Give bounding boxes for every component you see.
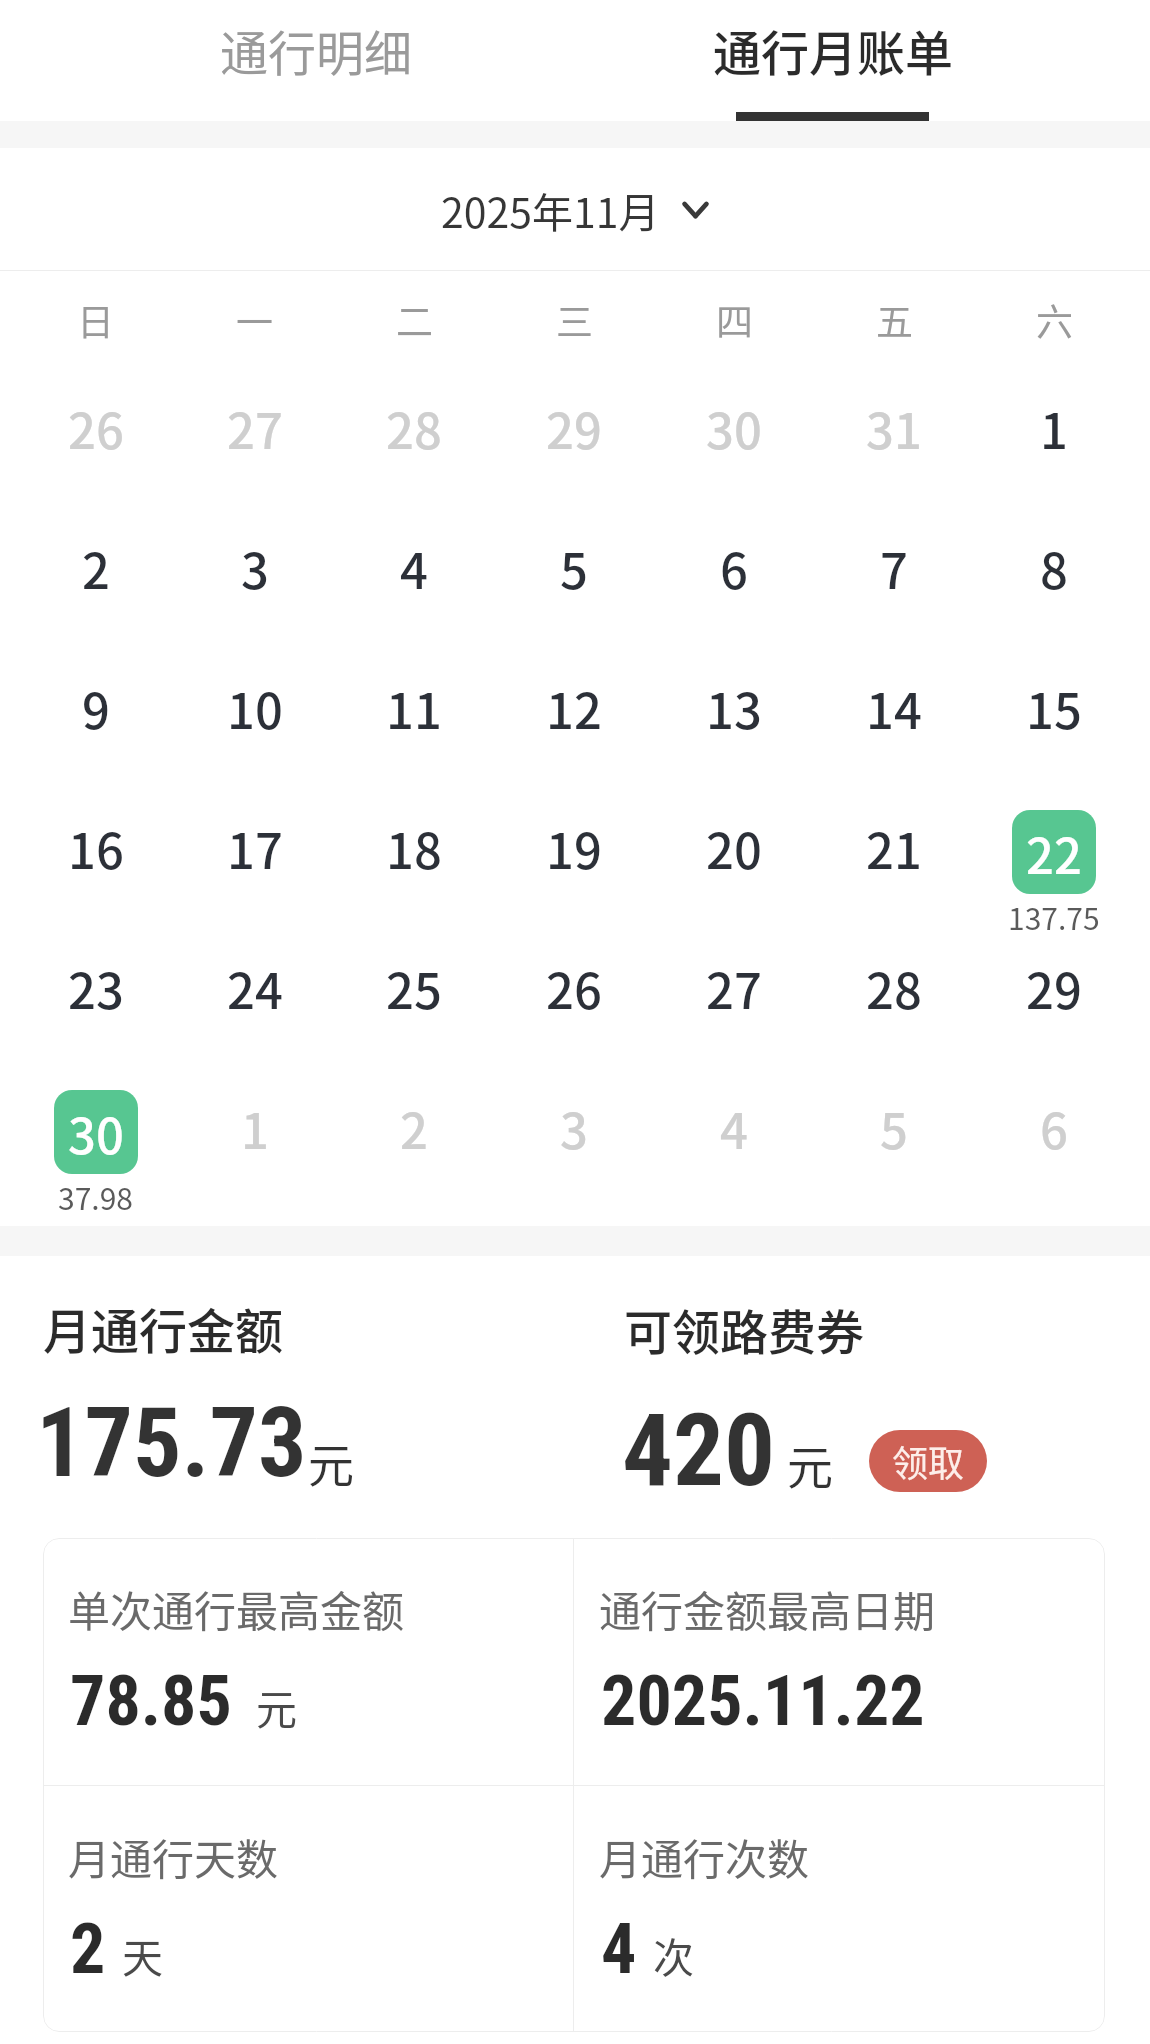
staticText: 领取 xyxy=(892,1435,965,1487)
button[interactable]: 14 xyxy=(814,642,974,782)
button[interactable]: 21 xyxy=(814,782,974,922)
button[interactable]: 12 xyxy=(494,642,654,782)
button[interactable]: 24 xyxy=(175,922,334,1062)
staticText: 2 xyxy=(82,532,110,603)
button[interactable]: 31 xyxy=(814,362,974,502)
staticText: 28 xyxy=(866,952,922,1023)
button[interactable]: 6 xyxy=(654,502,814,642)
button[interactable]: 11 xyxy=(334,642,494,782)
button[interactable]: 25 xyxy=(334,922,494,1062)
staticText: 29 xyxy=(546,392,602,463)
button[interactable]: 9 xyxy=(16,642,175,782)
button[interactable]: 17 xyxy=(175,782,334,922)
button[interactable]: 月通行次数 xyxy=(574,1786,1105,2032)
button[interactable]: 28 xyxy=(334,362,494,502)
staticText: 二 xyxy=(396,293,433,347)
button[interactable]: 通行月账单 xyxy=(575,0,1092,121)
staticText: 420 xyxy=(622,1391,776,1509)
button[interactable]: 6 xyxy=(974,1062,1134,1202)
button[interactable]: 3 xyxy=(494,1062,654,1202)
staticText: 137.75 xyxy=(1008,895,1100,938)
staticText: 通行月账单 xyxy=(713,15,954,85)
staticText: 17 xyxy=(227,812,283,883)
staticText: 1 xyxy=(1040,392,1068,463)
button[interactable]: 18 xyxy=(334,782,494,922)
button[interactable]: 2025年11月 xyxy=(441,180,709,239)
button[interactable]: 30 xyxy=(654,362,814,502)
staticText: 月通行天数 xyxy=(68,1826,279,1887)
staticText: 4 xyxy=(720,1092,748,1163)
button[interactable]: 28 xyxy=(814,922,974,1062)
button[interactable]: 通行金额最高日期 xyxy=(574,1538,1105,1785)
staticText: 8 xyxy=(1040,532,1068,603)
staticText: 30 xyxy=(68,1097,124,1168)
staticText: 28 xyxy=(386,392,442,463)
button[interactable]: 2 xyxy=(334,1062,494,1202)
staticText: 通行金额最高日期 xyxy=(599,1578,936,1639)
button[interactable]: 领取 xyxy=(869,1430,987,1492)
button[interactable]: 27 xyxy=(654,922,814,1062)
staticText: 2025.11.22 xyxy=(601,1660,925,1742)
button[interactable]: 26 xyxy=(494,922,654,1062)
staticText: 单次通行最高金额 xyxy=(68,1578,405,1639)
button[interactable]: 5 xyxy=(814,1062,974,1202)
button[interactable]: 19 xyxy=(494,782,654,922)
staticText: 次 xyxy=(653,1925,694,1984)
button[interactable]: 2 xyxy=(16,502,175,642)
button[interactable]: 13 xyxy=(654,642,814,782)
button[interactable]: 1 xyxy=(974,362,1134,502)
button[interactable]: 10 xyxy=(175,642,334,782)
staticText: 26 xyxy=(68,392,124,463)
staticText: 9 xyxy=(82,672,110,743)
staticText: 11 xyxy=(386,672,442,743)
other: Select month xyxy=(682,201,709,219)
staticText: 可领路费券 xyxy=(624,1294,865,1364)
button[interactable]: 单次通行最高金额 xyxy=(43,1538,573,1785)
staticText: 5 xyxy=(880,1092,908,1163)
staticText: 78.85 xyxy=(70,1660,232,1742)
button[interactable]: 通行明细 xyxy=(58,0,575,121)
staticText: 通行明细 xyxy=(220,15,413,85)
button[interactable]: 16 xyxy=(16,782,175,922)
staticText: 31 xyxy=(866,392,922,463)
staticText: 30 xyxy=(706,392,762,463)
button[interactable]: 26 xyxy=(16,362,175,502)
staticText: 19 xyxy=(546,812,602,883)
button[interactable]: 月通行天数 xyxy=(43,1786,573,2032)
button[interactable]: 20 xyxy=(654,782,814,922)
staticText: 月通行金额 xyxy=(43,1293,284,1363)
staticText: 元 xyxy=(256,1677,297,1736)
button[interactable]: 29 xyxy=(974,922,1134,1062)
button[interactable]: 23 xyxy=(16,922,175,1062)
button[interactable]: 4 xyxy=(654,1062,814,1202)
button[interactable]: 15 xyxy=(974,642,1134,782)
staticText: 23 xyxy=(68,952,124,1023)
staticText: 22 xyxy=(1026,817,1082,888)
staticText: 元 xyxy=(787,1431,833,1498)
button[interactable]: 3 xyxy=(175,502,334,642)
staticText: 4 xyxy=(601,1908,637,1990)
staticText: 29 xyxy=(1026,952,1082,1023)
staticText: 日 xyxy=(77,293,114,347)
button[interactable]: 1 xyxy=(175,1062,334,1202)
staticText: 10 xyxy=(227,672,283,743)
button[interactable]: 30 xyxy=(16,1062,175,1202)
staticText: 16 xyxy=(68,812,124,883)
staticText: 月通行次数 xyxy=(599,1826,810,1887)
staticText: 27 xyxy=(706,952,762,1023)
staticText: 5 xyxy=(560,532,588,603)
button[interactable]: 4 xyxy=(334,502,494,642)
staticText: 元 xyxy=(308,1429,354,1496)
staticText: 6 xyxy=(1040,1092,1068,1163)
button[interactable]: 7 xyxy=(814,502,974,642)
button[interactable]: 22 xyxy=(974,782,1134,922)
staticText: 20 xyxy=(706,812,762,883)
button[interactable]: 8 xyxy=(974,502,1134,642)
staticText: 12 xyxy=(546,672,602,743)
button[interactable]: 27 xyxy=(175,362,334,502)
staticText: 一 xyxy=(236,293,273,347)
button[interactable]: 29 xyxy=(494,362,654,502)
staticText: 六 xyxy=(1036,293,1073,347)
button[interactable]: 5 xyxy=(494,502,654,642)
staticText: 3 xyxy=(241,532,269,603)
